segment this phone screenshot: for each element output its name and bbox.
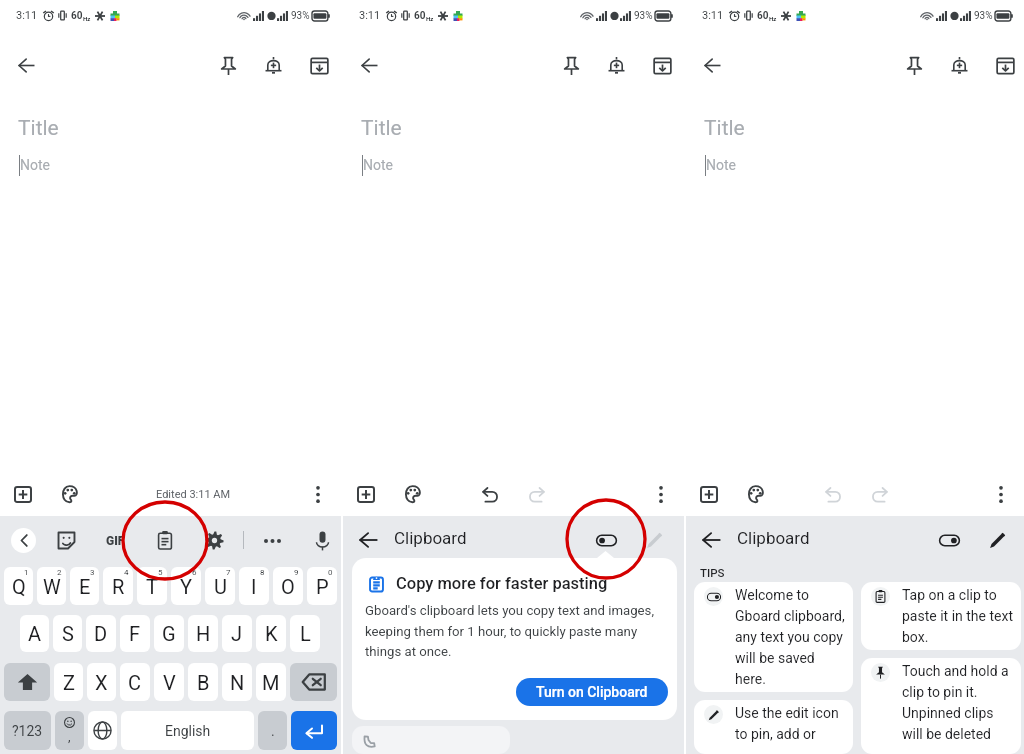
button[interactable]: N (222, 663, 252, 701)
button[interactable]: F (120, 615, 150, 652)
button[interactable]: Background options (394, 476, 430, 512)
button[interactable]: A (20, 615, 49, 652)
button[interactable]: Back (694, 523, 728, 557)
button[interactable]: H (188, 615, 218, 652)
staticText: 6 (192, 568, 197, 577)
button[interactable]: Background options (737, 476, 773, 512)
staticText: T (146, 575, 158, 598)
button[interactable]: Y (171, 567, 201, 605)
button[interactable]: Edit clips (638, 523, 672, 557)
button[interactable]: ?123 (4, 711, 51, 750)
button[interactable]: T (137, 567, 167, 605)
button[interactable]: Undo (472, 476, 508, 512)
button[interactable]: E (70, 567, 99, 605)
button[interactable]: Z (54, 663, 83, 701)
button[interactable]: G (154, 615, 184, 652)
button[interactable]: More options (643, 476, 679, 512)
staticText: A (28, 622, 42, 645)
staticText: Clipboard (737, 528, 810, 548)
button[interactable]: Toggle clipboard (931, 523, 967, 557)
button[interactable]: Shift (4, 663, 50, 701)
button[interactable]: Touch and hold a clip to pin it. Unpinne… (861, 658, 1021, 754)
button[interactable]: Undo (815, 476, 851, 512)
button[interactable]: C (120, 663, 150, 701)
button[interactable]: Emoji and comma (55, 711, 84, 750)
button[interactable]: Welcome to Gboard clipboard, any text yo… (694, 582, 853, 692)
button[interactable]: X (87, 663, 116, 701)
button[interactable]: Turn on Clipboard (516, 678, 668, 706)
button[interactable]: Add (348, 476, 384, 512)
staticText: . (271, 723, 275, 739)
button[interactable]: More options (300, 476, 336, 512)
button[interactable]: More options (983, 476, 1019, 512)
button[interactable]: B (188, 663, 218, 701)
button[interactable]: W (37, 567, 66, 605)
button[interactable]: J (222, 615, 252, 652)
button[interactable]: D (86, 615, 116, 652)
button[interactable]: Change language (88, 711, 117, 750)
button[interactable]: Back (694, 47, 731, 84)
button[interactable]: Add (5, 476, 41, 512)
button[interactable]: Backspace (290, 663, 337, 701)
staticText: Hz (83, 15, 91, 22)
button[interactable]: I (239, 567, 269, 605)
button[interactable]: L (290, 615, 320, 652)
button[interactable]: English (121, 711, 254, 750)
staticText: Title (361, 116, 402, 141)
button[interactable]: P (307, 567, 337, 605)
button[interactable]: M (256, 663, 286, 701)
staticText: S (62, 622, 74, 645)
button[interactable]: Back (351, 523, 385, 557)
button[interactable]: Back (351, 47, 388, 84)
button[interactable]: Voice input (306, 524, 339, 557)
button[interactable]: Add reminder (941, 47, 978, 84)
button[interactable]: Enter (291, 711, 337, 750)
staticText: C (128, 671, 142, 694)
button[interactable]: Redo (861, 476, 897, 512)
button[interactable]: Stickers (50, 524, 83, 557)
button[interactable]: . (258, 711, 287, 750)
button[interactable]: Add (691, 476, 727, 512)
staticText: 2 (57, 568, 62, 577)
button[interactable]: Archive (301, 47, 338, 84)
button[interactable]: Pin (210, 47, 247, 84)
button[interactable]: Toggle clipboard (588, 523, 624, 557)
button[interactable]: R (103, 567, 133, 605)
staticText: Welcome to Gboard clipboard, any text yo… (735, 587, 849, 687)
staticText: O (281, 575, 295, 598)
staticText: Y (180, 575, 193, 598)
button[interactable]: Back to keyboard (11, 528, 36, 553)
staticText: ?123 (12, 723, 43, 739)
button[interactable]: Background options (51, 476, 87, 512)
staticText: Gboard's clipboard lets you copy text an… (365, 603, 667, 659)
button[interactable]: Back (8, 47, 45, 84)
button[interactable]: Use the edit icon to pin, add or delete … (694, 700, 853, 754)
button[interactable]: Add reminder (255, 47, 292, 84)
button[interactable]: K (256, 615, 286, 652)
button[interactable]: Archive (987, 47, 1024, 84)
button[interactable]: S (53, 615, 82, 652)
button[interactable]: More tools (256, 524, 289, 557)
button[interactable]: Clipboard (148, 524, 181, 557)
button[interactable]: U (205, 567, 235, 605)
button[interactable]: O (273, 567, 303, 605)
staticText: Title (18, 116, 59, 141)
staticText: Turn on Clipboard (536, 684, 648, 700)
button[interactable]: Settings (198, 524, 231, 557)
staticText: H (196, 622, 211, 645)
button[interactable]: Redo (518, 476, 554, 512)
button[interactable]: V (154, 663, 184, 701)
button[interactable]: Add reminder (598, 47, 635, 84)
button[interactable]: GIF (99, 524, 132, 557)
button[interactable]: Edit clips (981, 523, 1015, 557)
staticText: TIPS (700, 566, 725, 579)
button[interactable] (352, 726, 510, 754)
button[interactable]: Pin (553, 47, 590, 84)
button[interactable]: Tap on a clip to paste it in the text bo… (861, 582, 1021, 650)
staticText: 60 (757, 10, 769, 22)
button[interactable]: Archive (644, 47, 681, 84)
button[interactable]: Pin (896, 47, 933, 84)
staticText: Hz (426, 15, 434, 22)
button[interactable]: Q (4, 567, 33, 605)
staticText: M (262, 671, 280, 694)
